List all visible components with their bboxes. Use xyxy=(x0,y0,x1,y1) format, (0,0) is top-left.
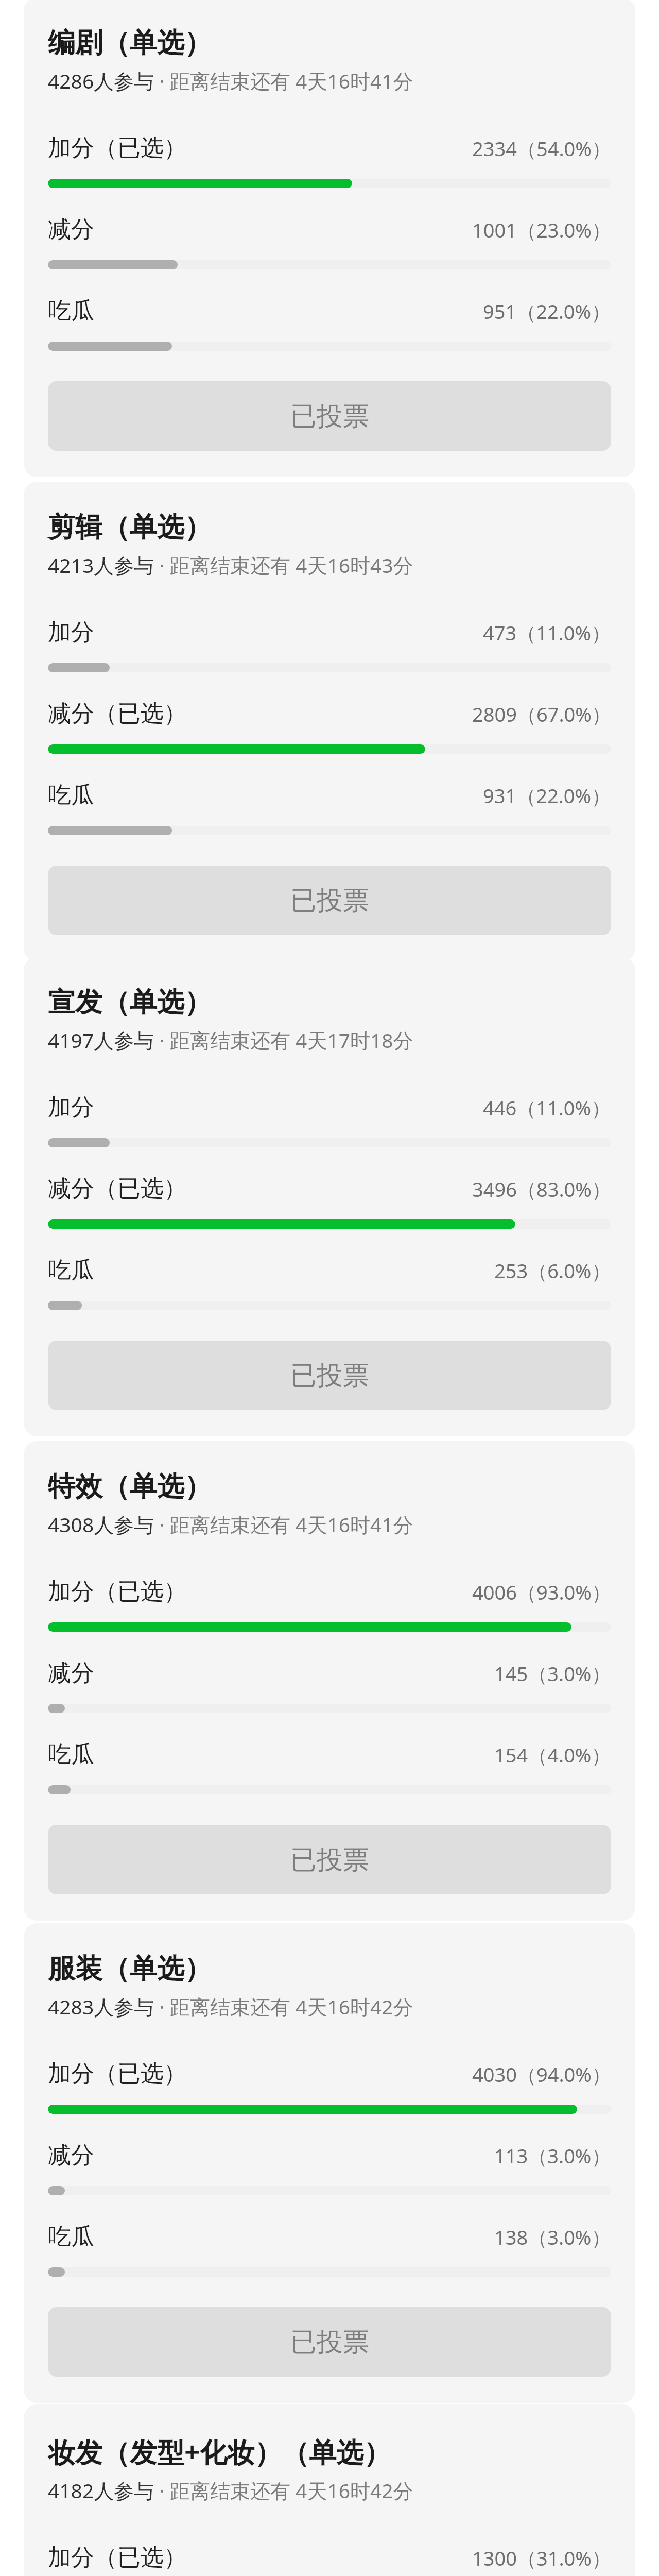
button[interactable]: 加分（已选） xyxy=(48,2543,611,2576)
staticText: 吃瓜 xyxy=(48,1256,94,1285)
staticText: 减分 xyxy=(48,1658,94,1688)
staticText: 减分（已选） xyxy=(48,1174,187,1204)
staticText: 113（3.0%） xyxy=(494,2142,611,2169)
staticText: 2334（54.0%） xyxy=(472,135,611,162)
staticText: 4213人参与 · 距离结束还有 4天16时43分 xyxy=(48,551,413,579)
staticText: 已投票 xyxy=(290,884,369,917)
button[interactable]: 加分（已选） xyxy=(48,2059,611,2114)
staticText: 加分（已选） xyxy=(48,133,187,163)
button[interactable]: 加分 xyxy=(48,1093,611,1147)
staticText: 2809（67.0%） xyxy=(472,701,611,727)
staticText: 已投票 xyxy=(290,1359,369,1392)
button[interactable]: 已投票 xyxy=(48,1341,611,1410)
button[interactable]: 已投票 xyxy=(48,866,611,935)
staticText: 服装（单选） xyxy=(48,1952,212,1986)
button[interactable]: 已投票 xyxy=(48,2307,611,2377)
button[interactable]: 减分（已选） xyxy=(48,1174,611,1229)
staticText: 吃瓜 xyxy=(48,296,94,326)
staticText: 1300（31.0%） xyxy=(472,2545,611,2571)
staticText: 951（22.0%） xyxy=(483,298,611,325)
button[interactable]: 吃瓜 xyxy=(48,781,611,835)
button[interactable]: 加分（已选） xyxy=(48,1577,611,1632)
staticText: 吃瓜 xyxy=(48,1740,94,1769)
button[interactable]: 已投票 xyxy=(48,1825,611,1894)
staticText: 4283人参与 · 距离结束还有 4天16时42分 xyxy=(48,1993,413,2020)
staticText: 4286人参与 · 距离结束还有 4天16时41分 xyxy=(48,67,413,94)
staticText: 4197人参与 · 距离结束还有 4天17时18分 xyxy=(48,1026,413,1054)
staticText: 吃瓜 xyxy=(48,2222,94,2251)
staticText: 138（3.0%） xyxy=(494,2224,611,2250)
staticText: 154（4.0%） xyxy=(494,1741,611,1768)
button[interactable]: 加分 xyxy=(48,618,611,672)
staticText: 145（3.0%） xyxy=(494,1660,611,1687)
button[interactable]: 加分（已选） xyxy=(48,133,611,188)
button[interactable]: 减分 xyxy=(48,215,611,269)
staticText: 已投票 xyxy=(290,400,369,433)
staticText: 253（6.0%） xyxy=(494,1257,611,1284)
button[interactable]: 吃瓜 xyxy=(48,2222,611,2277)
staticText: 4182人参与 · 距离结束还有 4天16时42分 xyxy=(48,2477,413,2504)
button[interactable]: 吃瓜 xyxy=(48,296,611,351)
staticText: 编剧（单选） xyxy=(48,26,212,60)
staticText: 446（11.0%） xyxy=(483,1094,611,1121)
staticText: 已投票 xyxy=(290,2326,369,2359)
staticText: 931（22.0%） xyxy=(483,782,611,809)
staticText: 妆发（发型+化妆）（单选） xyxy=(48,2433,391,2470)
staticText: 4030（94.0%） xyxy=(472,2061,611,2088)
button[interactable]: 减分（已选） xyxy=(48,699,611,754)
staticText: 1001（23.0%） xyxy=(472,216,611,243)
staticText: 剪辑（单选） xyxy=(48,510,212,545)
button[interactable]: 减分 xyxy=(48,2141,611,2195)
button[interactable]: 吃瓜 xyxy=(48,1256,611,1310)
staticText: 减分 xyxy=(48,215,94,244)
staticText: 宣发（单选） xyxy=(48,985,212,1020)
staticText: 加分 xyxy=(48,1093,94,1122)
staticText: 减分 xyxy=(48,2141,94,2170)
staticText: 减分（已选） xyxy=(48,699,187,728)
button[interactable]: 已投票 xyxy=(48,381,611,451)
staticText: 加分（已选） xyxy=(48,1577,187,1606)
staticText: 4308人参与 · 距离结束还有 4天16时41分 xyxy=(48,1511,413,1538)
staticText: 473（11.0%） xyxy=(483,619,611,646)
button[interactable]: 减分 xyxy=(48,1658,611,1713)
button[interactable]: 吃瓜 xyxy=(48,1740,611,1794)
staticText: 已投票 xyxy=(290,1843,369,1876)
staticText: 3496（83.0%） xyxy=(472,1176,611,1202)
staticText: 加分 xyxy=(48,618,94,647)
staticText: 加分（已选） xyxy=(48,2543,187,2572)
staticText: 加分（已选） xyxy=(48,2059,187,2089)
staticText: 吃瓜 xyxy=(48,781,94,810)
staticText: 4006（93.0%） xyxy=(472,1579,611,1605)
staticText: 特效（单选） xyxy=(48,1469,212,1504)
